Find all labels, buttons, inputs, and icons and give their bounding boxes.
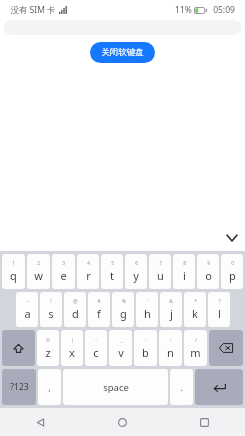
staticText: d bbox=[72, 306, 79, 321]
button[interactable]: / bbox=[184, 330, 207, 366]
button[interactable]: : bbox=[134, 330, 157, 366]
staticText: * bbox=[194, 298, 197, 305]
staticText: 0 bbox=[231, 260, 234, 267]
button[interactable]: Enter bbox=[195, 369, 243, 405]
staticText: l bbox=[218, 306, 221, 321]
button[interactable]: Back bbox=[0, 408, 81, 436]
button[interactable]: @ bbox=[64, 292, 86, 327]
button[interactable]: ; bbox=[159, 330, 182, 366]
button[interactable]: & bbox=[160, 292, 182, 327]
button[interactable]: 9 bbox=[197, 254, 219, 289]
staticText: o bbox=[205, 268, 212, 283]
staticText: | bbox=[71, 337, 74, 344]
staticText: % bbox=[122, 298, 126, 305]
button[interactable]: * bbox=[184, 292, 206, 327]
staticText: 没有 SIM 卡 bbox=[10, 4, 56, 16]
staticText: x bbox=[69, 345, 75, 360]
button[interactable]: 4 bbox=[77, 254, 99, 289]
staticText: @ bbox=[73, 298, 78, 305]
button[interactable]: 5 bbox=[101, 254, 123, 289]
staticText: 关闭软键盘 bbox=[101, 47, 144, 58]
staticText: w bbox=[34, 268, 43, 283]
staticText: ? bbox=[218, 298, 221, 305]
button[interactable]: | bbox=[61, 330, 83, 366]
staticText: / bbox=[195, 337, 197, 344]
staticText: j bbox=[170, 306, 173, 321]
staticText: h bbox=[144, 306, 151, 321]
staticText: , bbox=[48, 382, 51, 393]
staticText: b bbox=[142, 345, 149, 360]
button[interactable]: space bbox=[63, 369, 168, 405]
button[interactable]: 关闭软键盘 bbox=[90, 42, 155, 63]
staticText: . bbox=[180, 382, 183, 393]
staticText: space bbox=[103, 381, 129, 394]
button[interactable]: Shift bbox=[2, 330, 35, 366]
button[interactable]: 8 bbox=[173, 254, 195, 289]
staticText: a bbox=[24, 306, 31, 321]
staticText: s bbox=[48, 306, 54, 321]
button[interactable]: ?123 bbox=[2, 369, 36, 405]
staticText: 8 bbox=[183, 260, 186, 267]
staticText: 11% bbox=[175, 4, 192, 16]
button[interactable]: . bbox=[170, 369, 193, 405]
button[interactable]: ! bbox=[40, 292, 62, 327]
button[interactable]: 0 bbox=[221, 254, 243, 289]
button[interactable]: 1 bbox=[2, 254, 25, 289]
staticText: r bbox=[86, 268, 91, 283]
button[interactable]: % bbox=[112, 292, 134, 327]
button[interactable]: # bbox=[88, 292, 110, 327]
staticText: ~ bbox=[26, 298, 29, 305]
button[interactable]: , bbox=[38, 369, 61, 405]
staticText: c bbox=[93, 345, 99, 360]
button[interactable]: 6 bbox=[125, 254, 147, 289]
staticText: 2 bbox=[37, 260, 40, 267]
staticText: ! bbox=[50, 298, 52, 305]
staticText: # bbox=[97, 298, 101, 305]
staticText: z bbox=[45, 345, 51, 360]
button[interactable]: Hide keyboard bbox=[219, 225, 245, 251]
staticText: g bbox=[120, 306, 127, 321]
button[interactable]: Recents bbox=[163, 408, 245, 436]
staticText: 4 bbox=[87, 260, 90, 267]
staticText: u bbox=[157, 268, 164, 283]
staticText: e bbox=[60, 268, 67, 283]
button[interactable]: ` bbox=[136, 292, 158, 327]
button[interactable]: ~ bbox=[16, 292, 38, 327]
staticText: q bbox=[10, 268, 17, 283]
staticText: ?123 bbox=[10, 381, 29, 393]
button[interactable]: ? bbox=[208, 292, 230, 327]
staticText: 05:09 bbox=[213, 4, 235, 16]
staticText: ` bbox=[147, 298, 149, 305]
staticText: 3 bbox=[62, 260, 65, 267]
button[interactable]: Delete bbox=[209, 330, 243, 366]
button[interactable]: 7 bbox=[149, 254, 171, 289]
staticText: n bbox=[167, 345, 174, 360]
staticText: - bbox=[95, 337, 97, 344]
staticText: 6 bbox=[135, 260, 138, 267]
button[interactable]: 2 bbox=[27, 254, 50, 289]
button[interactable]: 3 bbox=[52, 254, 75, 289]
staticText: f bbox=[97, 306, 101, 321]
button[interactable]: - bbox=[85, 330, 107, 366]
staticText: 7 bbox=[159, 260, 162, 267]
staticText: i bbox=[183, 268, 186, 283]
staticText: p bbox=[229, 268, 236, 283]
staticText: _ bbox=[120, 337, 123, 344]
button[interactable]: _ bbox=[109, 330, 132, 366]
button[interactable]: H bbox=[37, 330, 59, 366]
staticText: 9 bbox=[207, 260, 210, 267]
staticText: : bbox=[145, 337, 147, 344]
staticText: 5 bbox=[111, 260, 114, 267]
staticText: m bbox=[190, 345, 201, 360]
staticText: H bbox=[46, 337, 50, 344]
staticText: ; bbox=[170, 337, 172, 344]
staticText: k bbox=[192, 306, 198, 321]
staticText: v bbox=[118, 345, 124, 360]
button[interactable]: Home bbox=[81, 408, 163, 436]
staticText: & bbox=[169, 298, 173, 305]
staticText: 1 bbox=[12, 260, 15, 267]
staticText: t bbox=[110, 268, 114, 283]
staticText: y bbox=[133, 268, 139, 283]
